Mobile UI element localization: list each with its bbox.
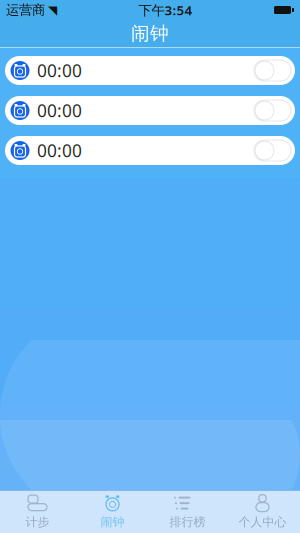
staticText: 排行榜 — [169, 515, 205, 529]
staticText: 下午3:54 — [138, 1, 192, 19]
button[interactable]: 个人中心 — [225, 491, 300, 533]
staticText: 00:00 — [37, 99, 82, 122]
button[interactable]: 计步 — [0, 491, 75, 533]
staticText: ◥ — [48, 3, 57, 17]
button[interactable]: 闹钟 — [0, 20, 300, 47]
button[interactable]: 00:00 — [5, 56, 295, 85]
staticText: 个人中心 — [238, 515, 286, 529]
staticText: 闹钟 — [100, 515, 124, 529]
staticText: 计步 — [25, 515, 49, 529]
button[interactable]: 00:00 — [5, 96, 295, 125]
staticText: 闹钟 — [131, 22, 169, 45]
staticText: 00:00 — [37, 139, 82, 162]
button[interactable]: 闹钟 — [75, 491, 150, 533]
staticText: 00:00 — [37, 59, 82, 82]
button[interactable]: 00:00 — [5, 136, 295, 165]
staticText: 运营商 — [6, 2, 45, 18]
button[interactable]: 排行榜 — [150, 491, 225, 533]
